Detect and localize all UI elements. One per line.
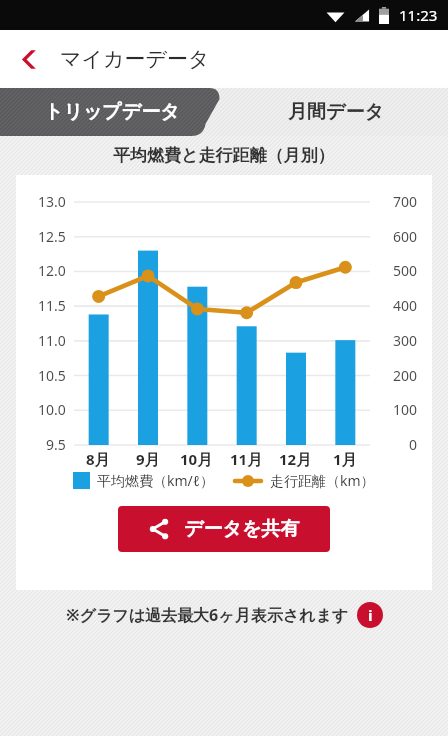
button[interactable]: Back xyxy=(6,36,52,82)
button[interactable]: トリップデータ xyxy=(0,88,224,136)
staticText: 走行距離（km） xyxy=(270,471,375,490)
staticText: 1月 xyxy=(333,449,357,469)
staticText: ※グラフは過去最大6ヶ月表示されます xyxy=(66,604,349,626)
staticText: i xyxy=(368,605,373,625)
staticText: 700 xyxy=(393,192,418,211)
button[interactable]: データを共有 xyxy=(118,506,330,552)
button[interactable]: Info xyxy=(357,602,383,628)
staticText: 8月 xyxy=(86,449,110,469)
staticText: 500 xyxy=(393,261,418,280)
staticText: 10.5 xyxy=(38,366,66,385)
staticText: データを共有 xyxy=(184,517,300,541)
staticText: 11.5 xyxy=(38,296,66,315)
staticText: 9.5 xyxy=(46,435,66,454)
staticText: 12.5 xyxy=(38,227,66,246)
staticText: 12.0 xyxy=(38,261,66,280)
staticText: 11.0 xyxy=(38,331,66,350)
staticText: 0 xyxy=(409,435,418,454)
staticText: トリップデータ xyxy=(44,100,180,124)
staticText: 11月 xyxy=(230,449,263,469)
staticText: 10月 xyxy=(180,449,213,469)
staticText: 200 xyxy=(393,366,418,385)
staticText: 600 xyxy=(393,227,418,246)
staticText: 100 xyxy=(393,400,418,419)
staticText: 12月 xyxy=(279,449,312,469)
staticText: 300 xyxy=(393,331,418,350)
staticText: マイカーデータ xyxy=(60,46,210,72)
staticText: 13.0 xyxy=(38,192,66,211)
staticText: 10.0 xyxy=(38,400,66,419)
staticText: 平均燃費と走行距離（月別） xyxy=(113,145,335,166)
button[interactable]: 月間データ xyxy=(224,88,448,136)
staticText: 400 xyxy=(393,296,418,315)
staticText: 平均燃費（km/ℓ） xyxy=(97,471,215,490)
staticText: 9月 xyxy=(136,449,160,469)
staticText: 月間データ xyxy=(288,100,384,124)
staticText: 11:23 xyxy=(399,5,438,25)
